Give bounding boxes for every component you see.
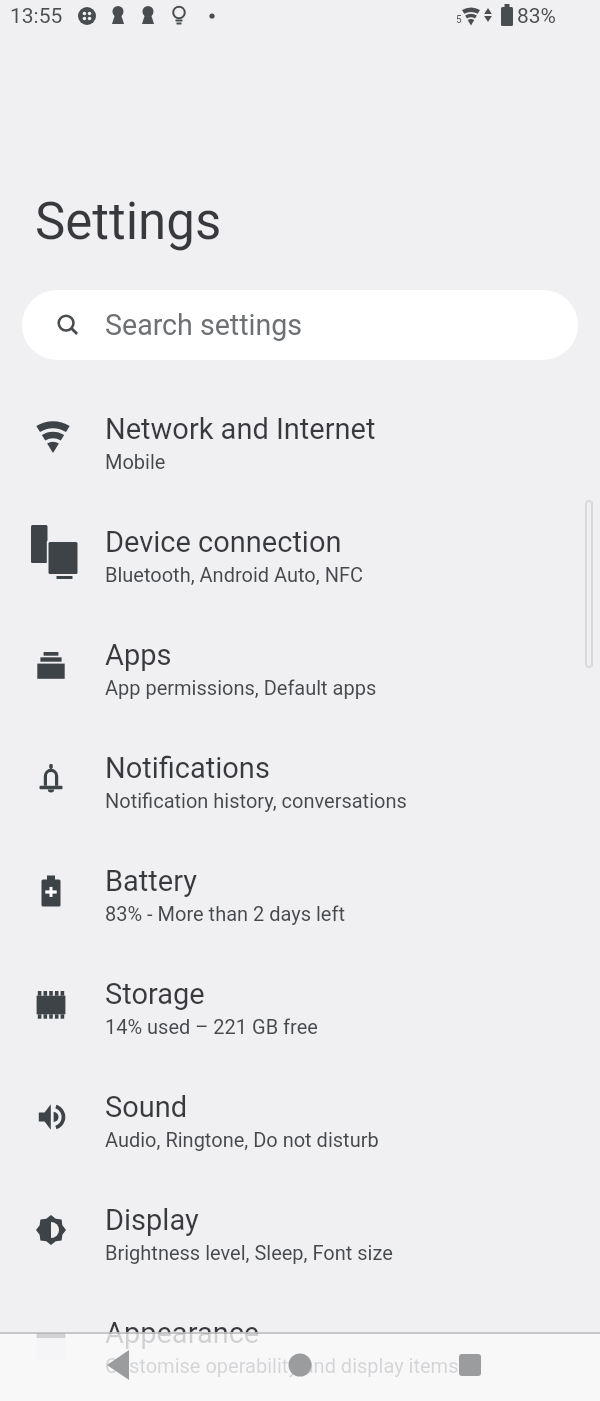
staticText: Search settings [105,308,303,342]
button[interactable]: Appearance [0,1290,600,1401]
staticText: 83% - More than 2 days left [105,902,345,925]
staticText: Storage [105,977,205,1011]
staticText: Display [105,1203,199,1237]
staticText: Appearance [105,1316,260,1350]
staticText: Notifications [105,751,270,785]
staticText: Sound [105,1090,188,1124]
button[interactable]: Display [0,1177,600,1290]
staticText: App permissions, Default apps [105,676,377,699]
staticText: 14% used – 221 GB free [105,1015,318,1038]
button[interactable]: Apps [0,612,600,725]
button[interactable]: Network and Internet [0,386,600,499]
staticText: Notification history, conversations [105,789,407,812]
staticText: Audio, Ringtone, Do not disturb [105,1128,379,1151]
button[interactable]: Battery [0,838,600,951]
button[interactable] [400,1330,600,1399]
staticText: Settings [35,192,222,252]
button[interactable] [0,1330,200,1399]
button[interactable]: Device connection [0,499,600,612]
staticText: 83% [517,4,556,29]
button[interactable]: Storage [0,951,600,1064]
staticText: Device connection [105,525,342,559]
staticText: Bluetooth, Android Auto, NFC [105,563,363,586]
staticText: Brightness level, Sleep, Font size [105,1241,393,1264]
staticText: 5 [456,14,462,26]
button[interactable]: Notifications [0,725,600,838]
button[interactable]: Search settings [22,290,578,360]
staticText: Network and Internet [105,412,376,446]
staticText: 13:55 [10,4,63,29]
staticText: Mobile [105,450,166,473]
button[interactable] [200,1330,400,1399]
staticText: Apps [105,638,172,672]
staticText: Battery [105,864,197,898]
button[interactable]: Sound [0,1064,600,1177]
staticText: Customise operability and display items [105,1354,459,1377]
